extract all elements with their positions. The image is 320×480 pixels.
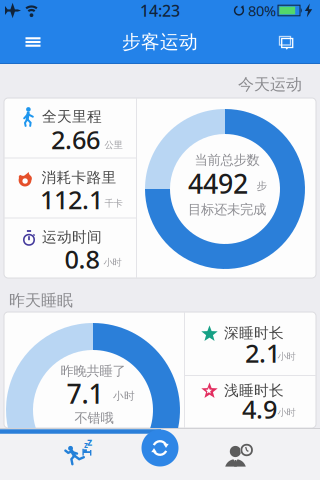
button[interactable]: 运动 [2, 428, 142, 480]
staticText: 运动时间 [42, 228, 102, 246]
staticText: 千卡 [104, 198, 122, 209]
staticText: z [87, 434, 92, 449]
staticText: 112.1 [40, 183, 103, 216]
staticText: 当前总步数 [194, 152, 259, 168]
staticText: 80% [248, 1, 276, 20]
button[interactable]: 同步 [141, 429, 179, 467]
staticText: 14:23 [140, 0, 180, 21]
staticText: 步 [256, 179, 267, 192]
button[interactable]: 消息 [271, 27, 301, 57]
staticText: 小时 [277, 351, 295, 362]
staticText: 目标还未完成 [188, 201, 266, 218]
staticText: 2.1 [245, 336, 280, 370]
staticText: z [84, 440, 88, 450]
button[interactable]: 菜单 [11, 24, 55, 60]
staticText: 不错哦 [74, 410, 113, 426]
staticText: 4.9 [242, 392, 277, 426]
staticText: 深睡时长 [224, 324, 284, 342]
staticText: 7.1 [66, 376, 103, 411]
staticText: 小时 [103, 257, 121, 268]
button[interactable]: 朋友 [173, 428, 313, 480]
staticText: 昨天睡眠 [9, 291, 73, 310]
staticText: 浅睡时长 [224, 381, 284, 399]
staticText: 今天运动 [238, 75, 302, 94]
staticText: 小时 [277, 407, 295, 418]
staticText: 全天里程 [42, 107, 102, 125]
staticText: 4492 [188, 166, 248, 201]
staticText: 0.8 [64, 242, 99, 276]
staticText: 昨晚共睡了 [60, 363, 125, 379]
staticText: 小时 [113, 389, 135, 402]
staticText: 步客运动 [122, 30, 198, 53]
staticText: 公里 [104, 139, 122, 151]
staticText: 消耗卡路里 [41, 168, 116, 186]
staticText: 2.66 [51, 123, 100, 156]
